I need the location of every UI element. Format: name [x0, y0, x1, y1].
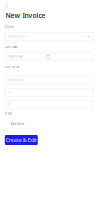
staticText: mm/dd/yyyy [8, 55, 22, 58]
button[interactable]: Back [5, 4, 8, 8]
staticText: Client [5, 25, 14, 29]
staticText: Description [8, 78, 24, 82]
staticText: 1 [8, 91, 10, 94]
staticText: Create & Edit [6, 136, 37, 144]
staticText: Add Item [11, 122, 24, 126]
staticText: New Invoice [6, 11, 46, 20]
button[interactable]: Add Item [5, 121, 26, 127]
staticText: Due Date [5, 45, 18, 49]
button[interactable]: Select client [5, 32, 93, 41]
button[interactable]: Create & Edit [5, 135, 38, 145]
staticText: 0.00 [5, 112, 12, 116]
staticText: Select client [8, 35, 25, 38]
staticText: Line Items [5, 65, 19, 68]
staticText: 0 [8, 103, 10, 107]
button[interactable]: mm/dd/yyyy [5, 52, 93, 61]
